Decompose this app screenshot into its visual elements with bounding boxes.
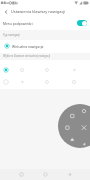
button[interactable]: Home [36,169,54,180]
button[interactable]: Back [1,7,11,17]
staticText: Wirtualna nawigacja [12,44,44,48]
button[interactable]: Wirtualna nawigacja [0,40,90,53]
staticText: Ustawienia klawiszy nawigacji [11,9,66,14]
button[interactable]: Recents [12,169,30,180]
button[interactable]: Back [60,169,78,180]
staticText: Menu podpowiedzi [3,21,33,25]
button[interactable]: Navigation assistant menu [58,104,90,148]
staticText: Wybierz klawisze wirtualnej nawigacji [3,54,51,58]
staticText: Typ nawigacji [3,33,20,37]
button[interactable]: Menu podpowiedzi [0,16,90,30]
button[interactable] [0,64,90,76]
button[interactable] [0,76,90,88]
